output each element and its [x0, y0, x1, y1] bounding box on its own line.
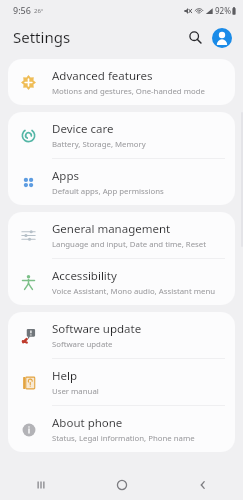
staticText: Accessibility — [52, 268, 117, 284]
staticText: Motions and gestures, One-handed mode — [52, 86, 205, 97]
staticText: Software update — [52, 321, 142, 337]
button[interactable]: Home — [81, 470, 162, 500]
button[interactable]: Back — [162, 470, 243, 500]
staticText: User manual — [52, 386, 99, 397]
button[interactable]: Search — [184, 26, 207, 49]
staticText: Voice Assistant, Mono audio, Assistant m… — [52, 286, 216, 297]
staticText: 9:56 — [13, 4, 31, 16]
staticText: Help — [52, 368, 78, 384]
staticText: Apps — [52, 168, 80, 184]
button[interactable]: Accessibility — [8, 259, 235, 305]
staticText: Battery, Storage, Memory — [52, 139, 146, 150]
staticText: Software update — [52, 339, 113, 350]
staticText: General management — [52, 221, 171, 237]
button[interactable]: About phone — [8, 406, 235, 452]
staticText: 26° — [34, 7, 44, 15]
staticText: 92% — [215, 5, 231, 16]
button[interactable]: Device care — [8, 112, 235, 158]
staticText: Default apps, App permissions — [52, 186, 164, 197]
staticText: Advanced features — [52, 68, 153, 84]
staticText: Status, Legal information, Phone name — [52, 433, 195, 444]
button[interactable]: Account — [212, 28, 232, 48]
staticText: Device care — [52, 121, 114, 137]
button[interactable]: Help — [8, 359, 235, 405]
staticText: Settings — [13, 27, 71, 47]
button[interactable]: Software update — [8, 312, 235, 358]
button[interactable]: Advanced features — [8, 59, 235, 105]
staticText: Language and input, Date and time, Reset — [52, 239, 207, 250]
button[interactable]: Recents — [0, 470, 81, 500]
staticText: About phone — [52, 415, 123, 431]
button[interactable]: General management — [8, 212, 235, 258]
button[interactable]: Apps — [8, 159, 235, 205]
